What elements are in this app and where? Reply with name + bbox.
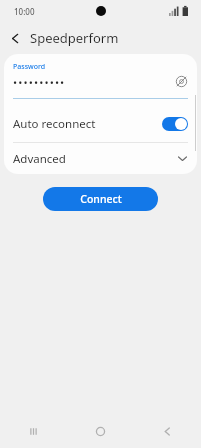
staticText: Speedperform (30, 29, 119, 47)
button[interactable]: Show password (171, 71, 191, 91)
button[interactable]: Recent apps (0, 415, 67, 448)
button[interactable]: Home (67, 415, 134, 448)
staticText: Advanced (13, 151, 66, 167)
staticText: Connect (80, 192, 122, 206)
button[interactable]: Auto reconnect (4, 105, 197, 142)
staticText: •••••••••• (13, 75, 66, 90)
button[interactable]: Back (0, 23, 30, 53)
button[interactable]: Password (4, 54, 197, 105)
staticText: 10:00 (14, 6, 35, 17)
staticText: Password (13, 62, 46, 72)
staticText: Auto reconnect (13, 116, 96, 132)
button[interactable]: Advanced (4, 143, 197, 174)
button[interactable]: Connect (43, 187, 158, 211)
button[interactable]: Back (134, 415, 201, 448)
